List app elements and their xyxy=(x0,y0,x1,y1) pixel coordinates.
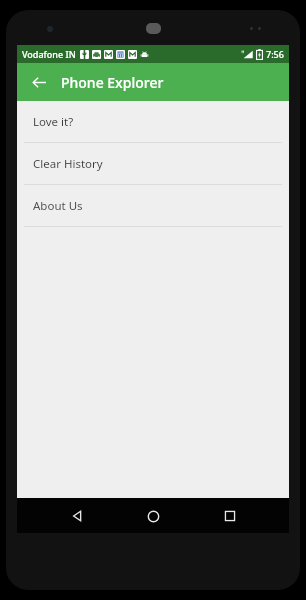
button[interactable]: Love it? xyxy=(17,101,289,142)
button[interactable]: Back xyxy=(23,66,55,98)
staticText: Love it? xyxy=(33,114,74,130)
staticText: Phone Explorer xyxy=(61,73,164,92)
staticText: 7:56 xyxy=(266,48,284,60)
button[interactable]: Home xyxy=(136,499,170,533)
staticText: Vodafone IN xyxy=(22,48,76,60)
button[interactable]: About Us xyxy=(17,185,289,226)
staticText: Clear History xyxy=(33,156,103,172)
staticText: About Us xyxy=(33,198,83,214)
button[interactable]: Recent apps xyxy=(213,499,247,533)
button[interactable]: Back xyxy=(60,499,94,533)
button[interactable]: Clear History xyxy=(17,143,289,184)
